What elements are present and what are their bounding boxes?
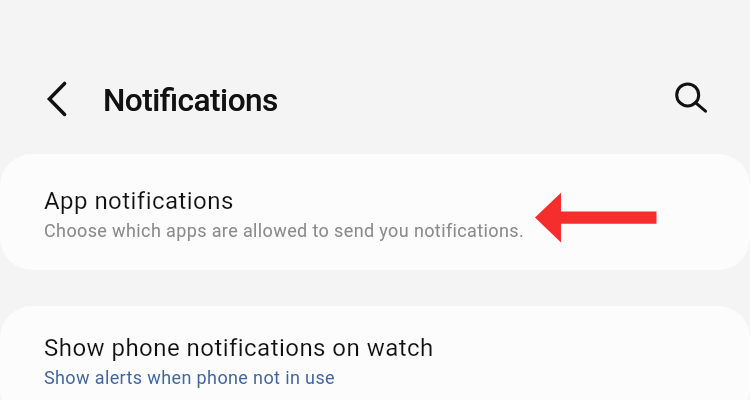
staticText: Choose which apps are allowed to send yo… bbox=[44, 220, 525, 241]
staticText: Notifications bbox=[103, 82, 278, 119]
button[interactable]: Show phone notifications on watch bbox=[0, 306, 750, 400]
button[interactable]: App notifications bbox=[0, 154, 750, 270]
staticText: Show phone notifications on watch bbox=[44, 334, 434, 362]
staticText: App notifications bbox=[44, 187, 234, 215]
button[interactable]: Navigate up bbox=[28, 75, 76, 123]
button[interactable]: Search bbox=[664, 71, 712, 119]
staticText: Notifications bbox=[103, 82, 278, 119]
staticText: Show alerts when phone not in use bbox=[44, 367, 336, 388]
